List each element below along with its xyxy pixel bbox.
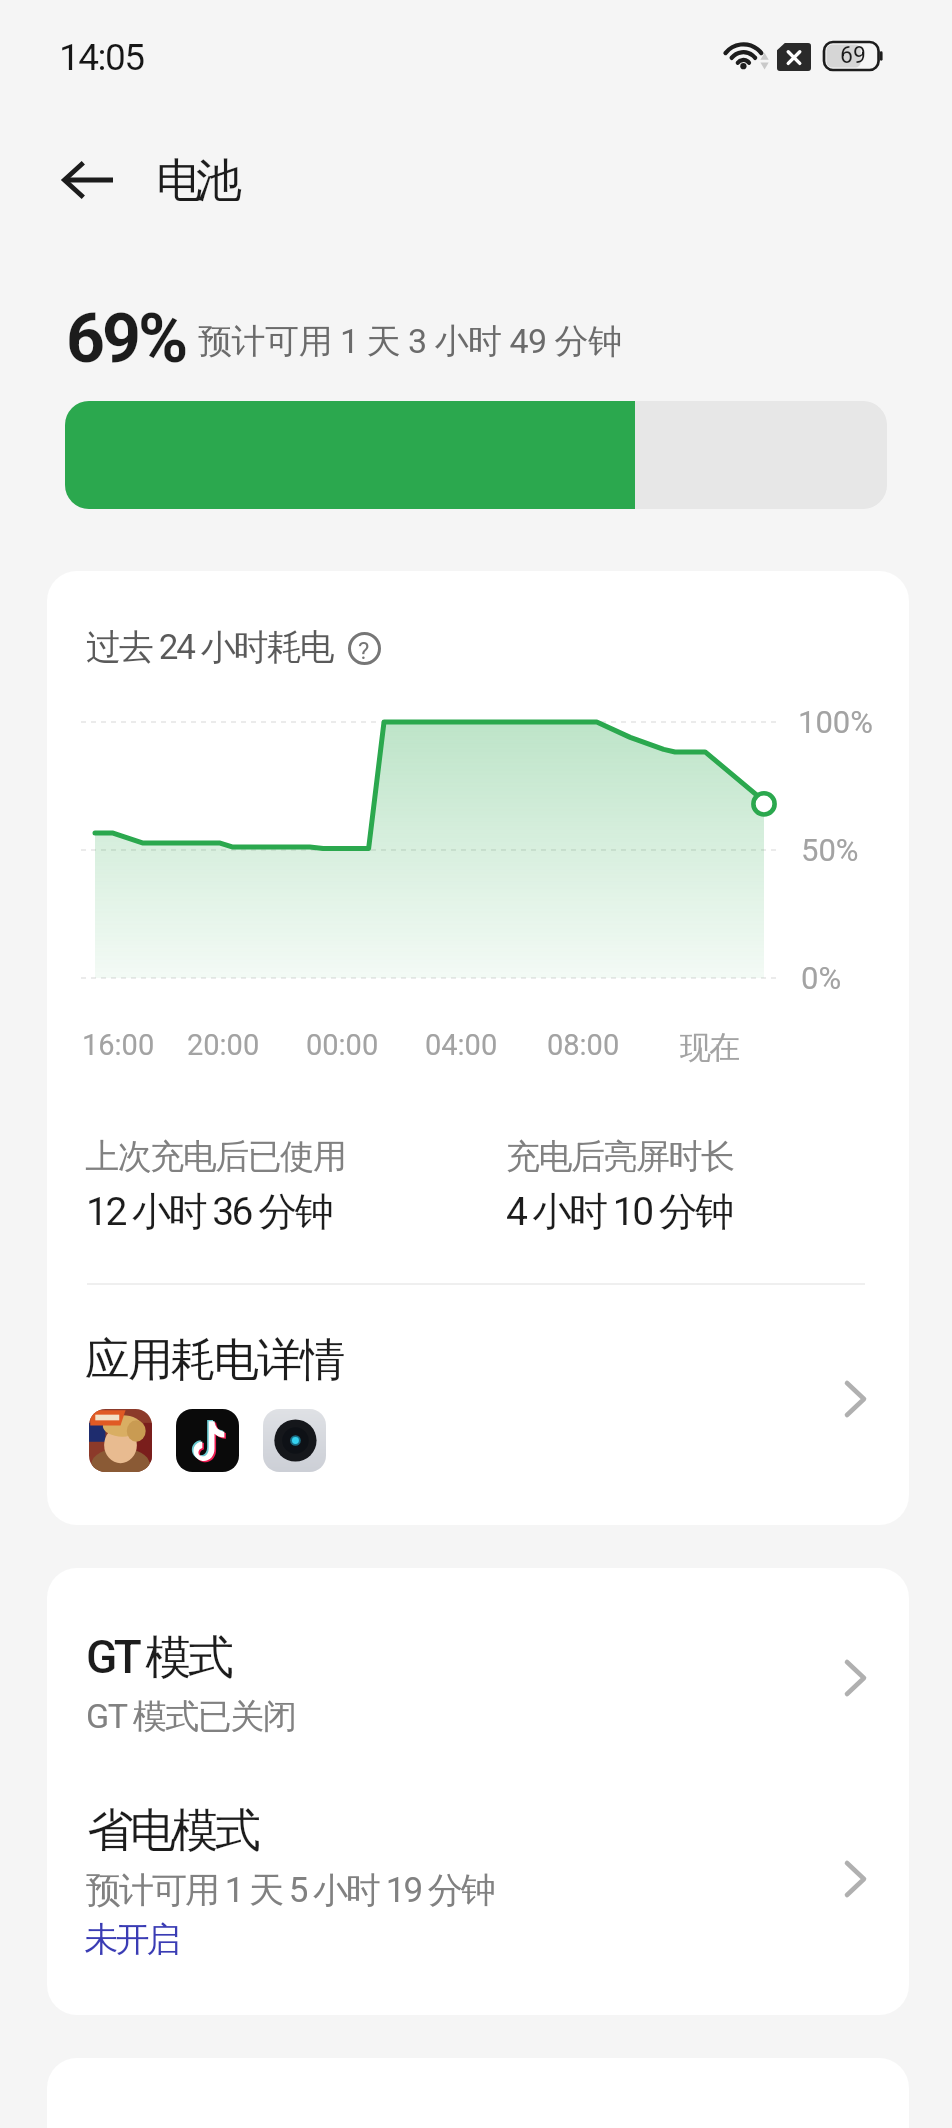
button[interactable]: 省电模式 xyxy=(47,1758,909,2015)
staticText: 充电后亮屏时长 xyxy=(506,1135,734,1178)
staticText: GT 模式 xyxy=(86,1629,231,1687)
staticText: 上次充电后已使用 xyxy=(86,1135,346,1178)
staticText: 预计可用 1 天 5 小时 19 分钟 xyxy=(86,1868,494,1912)
staticText: 50% xyxy=(801,832,859,868)
staticText: 省电模式 xyxy=(89,1802,259,1860)
staticText: 04:00 xyxy=(425,1028,498,1062)
button[interactable]: 应用耗电详情 xyxy=(47,1294,909,1525)
staticText: 69 xyxy=(840,42,866,69)
staticText: 4 小时 10 分钟 xyxy=(506,1187,732,1236)
staticText: 20:00 xyxy=(187,1028,260,1062)
staticText: 16:00 xyxy=(82,1028,155,1062)
staticText: 08:00 xyxy=(547,1028,620,1062)
staticText: 未开启 xyxy=(86,1918,179,1961)
staticText: 现在 xyxy=(681,1028,739,1067)
staticText: 14:05 xyxy=(59,36,144,79)
staticText: 过去 24 小时耗电 xyxy=(86,625,333,669)
button[interactable]: GT 模式 xyxy=(47,1568,909,1758)
staticText: 12 小时 36 分钟 xyxy=(86,1187,332,1236)
staticText: 100% xyxy=(798,704,873,740)
staticText: GT 模式已关闭 xyxy=(86,1695,296,1738)
staticText: 00:00 xyxy=(306,1028,379,1062)
staticText: 预计可用 1 天 3 小时 49 分钟 xyxy=(198,320,622,363)
staticText: 0% xyxy=(801,960,842,996)
staticText: 69% xyxy=(66,299,186,379)
staticText: 电池 xyxy=(159,152,239,210)
button[interactable]: Back xyxy=(42,134,134,226)
staticText: 应用耗电详情 xyxy=(86,1332,344,1389)
staticText: ? xyxy=(358,637,370,665)
